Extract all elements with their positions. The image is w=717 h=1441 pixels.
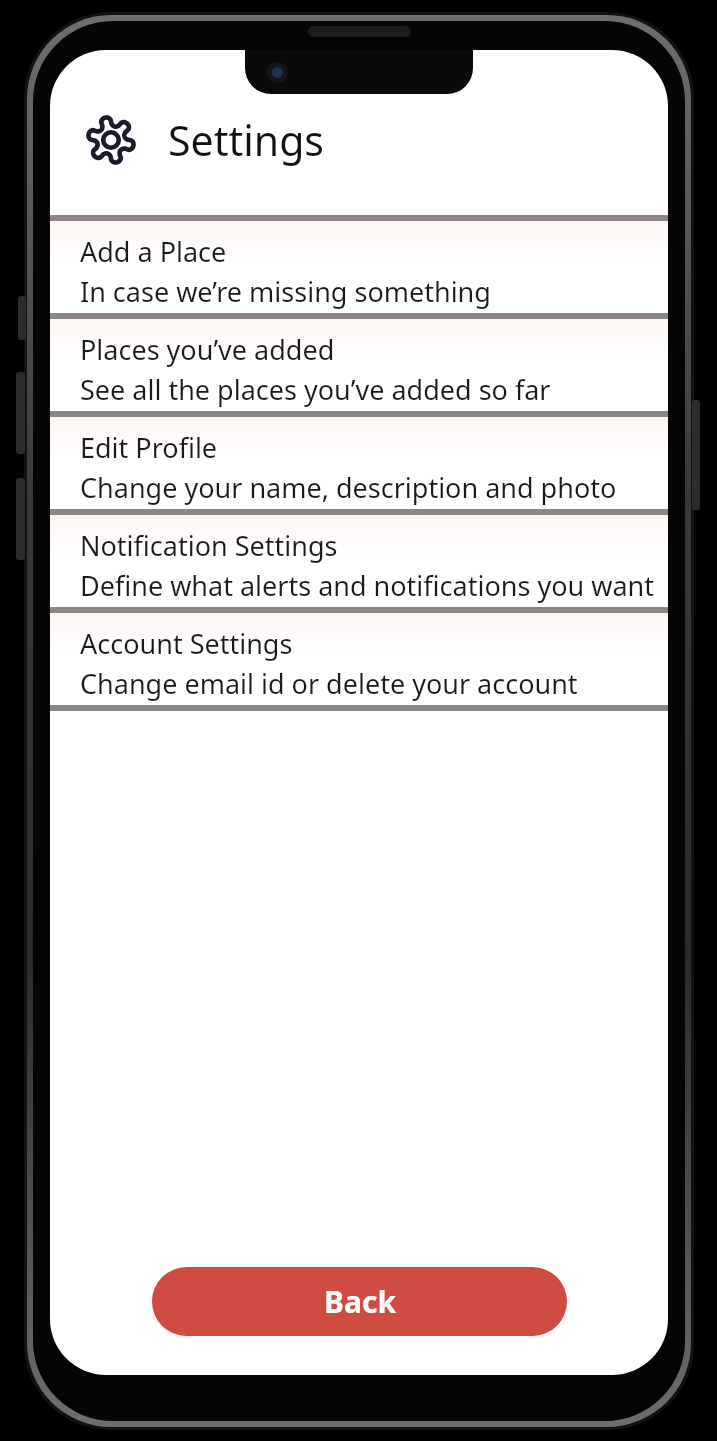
- button[interactable]: Back: [152, 1267, 567, 1336]
- staticText: Add a Place: [80, 233, 227, 270]
- staticText: See all the places you’ve added so far: [80, 371, 551, 408]
- button[interactable]: Notification Settings: [50, 515, 668, 607]
- staticText: Places you’ve added: [80, 331, 335, 368]
- staticText: Back: [324, 1281, 396, 1322]
- staticText: Change email id or delete your account: [80, 665, 578, 702]
- staticText: Settings: [168, 112, 325, 168]
- button[interactable]: Add a Place: [50, 221, 668, 313]
- staticText: In case we’re missing something: [80, 273, 491, 310]
- staticText: Account Settings: [80, 625, 293, 662]
- staticText: Notification Settings: [80, 527, 338, 564]
- button[interactable]: Edit Profile: [50, 417, 668, 509]
- button[interactable]: Account Settings: [50, 613, 668, 705]
- staticText: Edit Profile: [80, 429, 218, 466]
- staticText: Define what alerts and notifications you…: [80, 567, 654, 604]
- staticText: Change your name, description and photo: [80, 469, 617, 506]
- button[interactable]: Places you’ve added: [50, 319, 668, 411]
- other: Settings: [80, 109, 142, 171]
